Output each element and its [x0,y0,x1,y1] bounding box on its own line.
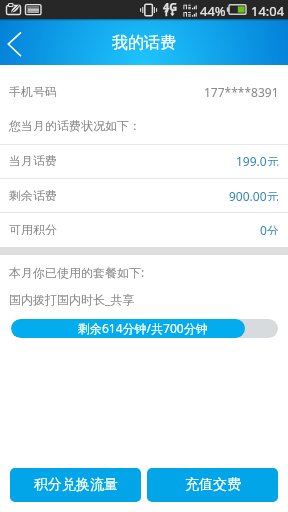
staticText: 当月话费 [9,153,57,166]
staticText: 199.0元 [236,153,279,166]
staticText: 4G [163,0,178,14]
button[interactable]: 积分兑换流量 [10,468,141,502]
staticText: 国内拨打国内时长_共享 [9,291,135,307]
staticText: 剩余话费 [9,188,57,201]
staticText: 14:04 [251,2,285,20]
button[interactable]: 剩余614分钟/共700分钟 [11,319,278,338]
staticText: 您当月的话费状况如下： [9,118,141,133]
staticText: 本月你已使用的套餐如下: [9,264,145,280]
staticText: 积分兑换流量 [34,476,118,494]
staticText: 0分 [260,222,279,235]
staticText: 充值交费 [185,476,241,494]
staticText: 手机号码 [9,84,57,97]
button[interactable]: 充值交费 [147,468,278,502]
staticText: 44% [200,2,226,20]
staticText: 我的话费 [112,33,176,53]
staticText: 剩余614分钟/共700分钟 [78,320,208,336]
button[interactable]: Back [0,19,30,65]
staticText: 可用积分 [9,222,57,235]
staticText: 177****8391 [204,84,279,97]
staticText: 900.00元 [229,188,279,201]
